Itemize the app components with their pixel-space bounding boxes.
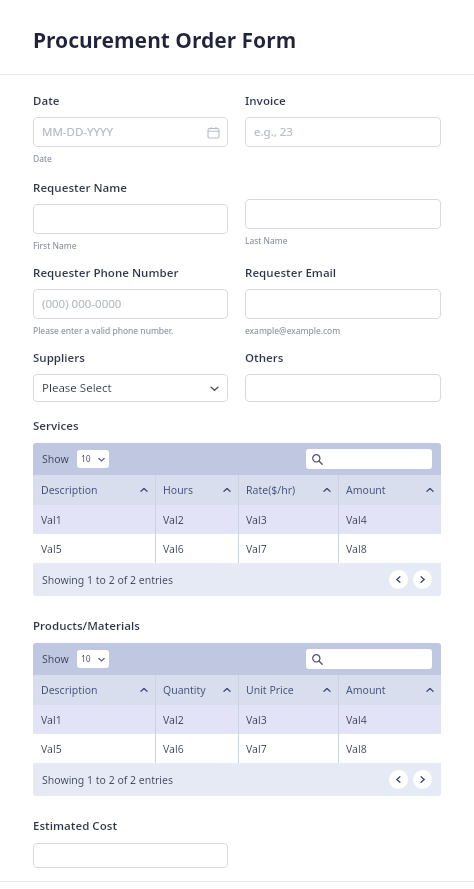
- button[interactable]: Next page: [413, 570, 432, 589]
- button[interactable]: 10: [77, 450, 109, 468]
- staticText: Val8: [346, 542, 367, 556]
- staticText: Description: [41, 483, 98, 497]
- staticText: Val2: [163, 513, 184, 527]
- staticText: Show: [42, 452, 69, 466]
- staticText: Quantity: [163, 683, 206, 697]
- staticText: Val5: [41, 542, 62, 556]
- staticText: Show: [42, 652, 69, 666]
- button[interactable]: Previous page: [389, 770, 408, 789]
- button[interactable]: Quantity: [155, 675, 238, 705]
- staticText: Estimated Cost: [33, 818, 118, 834]
- staticText: Val6: [163, 742, 184, 756]
- staticText: Val5: [41, 742, 62, 756]
- button[interactable]: Next page: [413, 770, 432, 789]
- staticText: 10: [81, 453, 91, 465]
- staticText: Last Name: [245, 235, 288, 247]
- staticText: e.g., 23: [254, 124, 293, 140]
- staticText: Products/Materials: [33, 618, 140, 634]
- button[interactable]: [245, 374, 441, 402]
- button[interactable]: [245, 289, 441, 319]
- button[interactable]: Val5: [33, 534, 441, 563]
- staticText: Val7: [246, 542, 267, 556]
- button[interactable]: Amount: [338, 675, 441, 705]
- button[interactable]: Unit Price: [238, 675, 338, 705]
- staticText: Others: [245, 350, 284, 366]
- staticText: Date: [33, 93, 60, 109]
- button[interactable]: Val1: [33, 505, 441, 534]
- button[interactable]: Hours: [155, 475, 238, 505]
- staticText: Val8: [346, 742, 367, 756]
- staticText: Amount: [346, 683, 386, 697]
- button[interactable]: Val1: [33, 705, 441, 734]
- staticText: Please Select: [42, 380, 112, 396]
- button[interactable]: Amount: [338, 475, 441, 505]
- staticText: Requester Name: [33, 180, 128, 196]
- staticText: Rate($/hr): [246, 483, 296, 497]
- staticText: Requester Phone Number: [33, 265, 179, 281]
- staticText: Please enter a valid phone number.: [33, 325, 174, 337]
- button[interactable]: Description: [33, 675, 155, 705]
- staticText: 10: [81, 653, 91, 665]
- staticText: (000) 000-0000: [42, 296, 122, 312]
- button[interactable]: [245, 199, 441, 229]
- button[interactable]: e.g., 23: [245, 117, 441, 147]
- staticText: Val2: [163, 713, 184, 727]
- staticText: Val4: [346, 513, 367, 527]
- button[interactable]: Please Select: [33, 374, 228, 402]
- staticText: Suppliers: [33, 350, 85, 366]
- button[interactable]: Previous page: [389, 570, 408, 589]
- staticText: Services: [33, 418, 79, 434]
- staticText: Requester Email: [245, 265, 337, 281]
- staticText: Unit Price: [246, 683, 294, 697]
- staticText: Showing 1 to 2 of 2 entries: [42, 573, 174, 587]
- staticText: Val7: [246, 742, 267, 756]
- button[interactable]: MM-DD-YYYY: [33, 117, 228, 147]
- button[interactable]: Val5: [33, 734, 441, 763]
- staticText: Showing 1 to 2 of 2 entries: [42, 773, 174, 787]
- staticText: Val4: [346, 713, 367, 727]
- staticText: Val3: [246, 713, 267, 727]
- button[interactable]: Description: [33, 475, 155, 505]
- staticText: Invoice: [245, 93, 286, 109]
- staticText: example@example.com: [245, 325, 341, 337]
- staticText: Description: [41, 683, 98, 697]
- button[interactable]: (000) 000-0000: [33, 289, 228, 319]
- staticText: Hours: [163, 483, 193, 497]
- staticText: Val1: [41, 513, 62, 527]
- button[interactable]: Rate($/hr): [238, 475, 338, 505]
- staticText: Procurement Order Form: [33, 26, 297, 55]
- staticText: First Name: [33, 240, 77, 252]
- staticText: Date: [33, 153, 52, 165]
- staticText: Amount: [346, 483, 386, 497]
- button[interactable]: [306, 449, 432, 469]
- staticText: Val6: [163, 542, 184, 556]
- button[interactable]: [306, 649, 432, 669]
- staticText: Val3: [246, 513, 267, 527]
- button[interactable]: [33, 204, 228, 234]
- staticText: MM-DD-YYYY: [42, 124, 114, 140]
- staticText: Val1: [41, 713, 62, 727]
- button[interactable]: [33, 843, 228, 868]
- button[interactable]: 10: [77, 650, 109, 668]
